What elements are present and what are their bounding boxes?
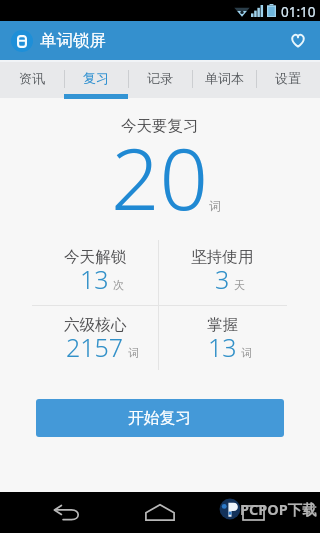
staticText: 记录 — [147, 70, 173, 86]
button[interactable]: 记录 — [128, 60, 192, 100]
staticText: 单词本 — [205, 70, 244, 86]
staticText: 次 — [113, 278, 124, 292]
button[interactable]: 开始复习 — [36, 399, 284, 437]
staticText: 单词锁屏 — [40, 30, 106, 51]
staticText: 天 — [234, 278, 245, 292]
staticText: 词 — [241, 346, 252, 360]
staticText: 今天要复习 — [121, 116, 199, 136]
staticText: 六级核心 — [64, 315, 127, 335]
button[interactable]: 掌握 — [158, 305, 287, 373]
button[interactable]: Recent apps — [224, 499, 284, 526]
button[interactable]: Favorite — [276, 21, 320, 60]
staticText: 掌握 — [207, 315, 239, 335]
button[interactable]: 单词本 — [192, 60, 256, 100]
staticText: 13 — [80, 262, 109, 296]
staticText: 01:10 — [281, 3, 316, 21]
button[interactable]: 坚持使用 — [158, 237, 287, 305]
staticText: 今天解锁 — [64, 247, 127, 267]
button[interactable]: 复习 — [64, 60, 128, 100]
staticText: 坚持使用 — [191, 247, 254, 267]
staticText: 设置 — [275, 70, 301, 86]
button[interactable]: 六级核心 — [32, 305, 158, 373]
staticText: 2157 — [66, 330, 124, 364]
staticText: 词 — [128, 346, 139, 360]
staticText: 20 — [111, 119, 209, 235]
staticText: 3 — [215, 262, 230, 296]
staticText: 词 — [209, 198, 221, 213]
staticText: 13 — [208, 330, 237, 364]
button[interactable]: 设置 — [256, 60, 320, 100]
button[interactable]: Home — [130, 499, 190, 526]
button[interactable]: 今天解锁 — [32, 237, 158, 305]
staticText: 开始复习 — [128, 408, 192, 428]
staticText: 复习 — [83, 70, 109, 86]
staticText: 资讯 — [19, 70, 45, 86]
button[interactable]: Back — [37, 499, 97, 526]
button[interactable]: 资讯 — [0, 60, 64, 100]
staticText: PCPOP下载 — [240, 499, 317, 519]
